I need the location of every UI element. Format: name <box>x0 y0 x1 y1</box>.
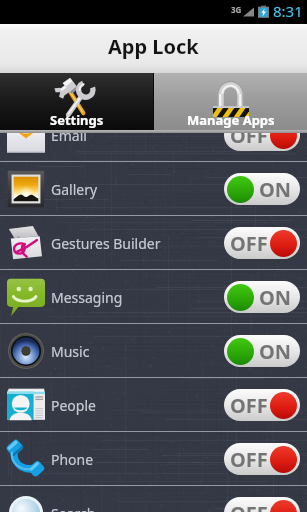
button[interactable]: Messaging <box>0 270 307 324</box>
staticText: Messaging <box>51 288 123 307</box>
button[interactable]: People <box>0 378 307 432</box>
staticText: Music <box>51 342 90 361</box>
staticText: OFF <box>230 500 268 512</box>
button[interactable]: Manage Apps <box>154 73 307 130</box>
staticText: Search <box>51 504 96 512</box>
button[interactable]: Lock off <box>224 119 300 151</box>
staticText: Gestures Builder <box>51 234 161 253</box>
button[interactable]: Gestures Builder <box>0 216 307 270</box>
staticText: Gallery <box>51 180 98 199</box>
staticText: 8:31 <box>273 1 303 21</box>
staticText: Manage Apps <box>187 111 275 129</box>
staticText: Phone <box>51 450 94 469</box>
staticText: Settings <box>50 111 104 129</box>
staticText: OFF <box>230 446 268 473</box>
button[interactable]: Gallery <box>0 162 307 216</box>
staticText: OFF <box>230 230 268 257</box>
button[interactable]: Phone <box>0 432 307 486</box>
button[interactable]: Lock on <box>224 335 300 367</box>
staticText: ON <box>259 176 292 203</box>
button[interactable]: Music <box>0 324 307 378</box>
button[interactable]: Lock off <box>224 227 300 259</box>
button[interactable]: Search <box>0 486 307 512</box>
staticText: ON <box>259 284 292 311</box>
button[interactable]: Lock on <box>224 173 300 205</box>
staticText: App Lock <box>108 33 199 60</box>
staticText: ON <box>259 338 292 365</box>
staticText: OFF <box>230 392 268 419</box>
staticText: OFF <box>230 122 268 149</box>
button[interactable]: Lock on <box>224 281 300 313</box>
staticText: Email <box>51 126 87 145</box>
button[interactable]: Settings <box>0 73 153 130</box>
button[interactable]: Lock off <box>224 443 300 475</box>
button[interactable]: Lock off <box>224 497 300 512</box>
button[interactable]: Email <box>0 108 307 162</box>
button[interactable]: Lock off <box>224 389 300 421</box>
staticText: 3G <box>231 4 242 15</box>
staticText: People <box>51 396 96 415</box>
